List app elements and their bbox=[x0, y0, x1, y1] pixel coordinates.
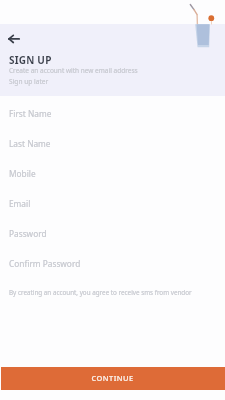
button[interactable]: Sign up later bbox=[9, 77, 49, 86]
staticText: CONTINUE bbox=[91, 373, 134, 383]
button[interactable]: Back bbox=[2, 27, 26, 51]
staticText: Confirm Password bbox=[9, 258, 81, 269]
button[interactable]: Confirm Password bbox=[0, 250, 225, 276]
button[interactable]: Last Name bbox=[0, 130, 225, 156]
button[interactable]: Password bbox=[0, 220, 225, 246]
button[interactable]: Email bbox=[0, 190, 225, 216]
staticText: Mobile bbox=[9, 168, 36, 179]
button[interactable]: Mobile bbox=[0, 160, 225, 186]
staticText: Create an account with new email address bbox=[9, 66, 138, 75]
staticText: Email bbox=[9, 198, 31, 209]
staticText: By creating an account, you agree to rec… bbox=[9, 288, 192, 297]
staticText: Last Name bbox=[9, 138, 51, 149]
staticText: SIGN UP bbox=[9, 53, 52, 67]
staticText: Password bbox=[9, 228, 47, 239]
button[interactable]: CONTINUE bbox=[1, 367, 225, 390]
button[interactable]: First Name bbox=[0, 100, 225, 126]
staticText: First Name bbox=[9, 108, 52, 119]
